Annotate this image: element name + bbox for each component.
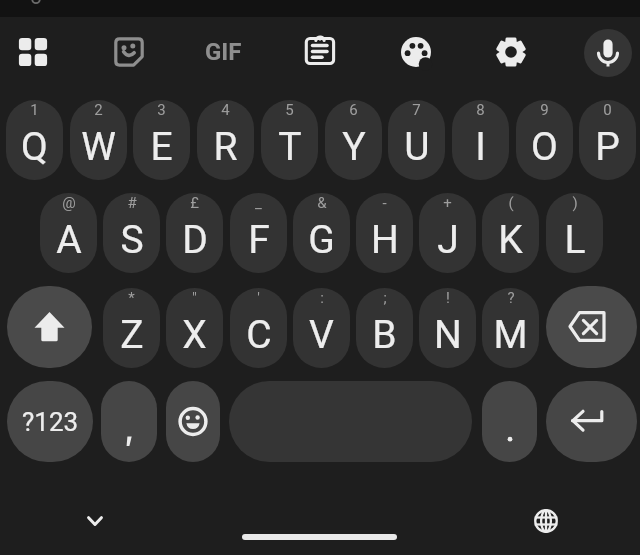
staticText: U	[404, 124, 430, 170]
staticText: '	[257, 289, 260, 307]
staticText: -	[382, 194, 387, 212]
staticText: R	[213, 124, 238, 170]
button[interactable]: Change language	[522, 497, 570, 545]
staticText: "	[192, 289, 197, 307]
staticText: (	[508, 194, 514, 212]
button[interactable]: @	[40, 193, 97, 273]
staticText: 1	[30, 101, 39, 119]
button[interactable]: +	[419, 193, 476, 273]
staticText: M	[493, 312, 528, 358]
button[interactable]: Voice input	[584, 29, 632, 77]
button[interactable]: 3	[133, 100, 190, 180]
button[interactable]: 5	[261, 100, 318, 180]
staticText: P	[595, 124, 620, 170]
staticText: )	[572, 194, 578, 212]
staticText: D	[182, 217, 208, 263]
button[interactable]: 4	[197, 100, 254, 180]
staticText: !	[446, 289, 450, 307]
button[interactable]: Keyboard modes	[9, 28, 57, 76]
staticText: S	[120, 217, 144, 263]
button[interactable]: Emoji	[166, 381, 220, 462]
button[interactable]: Shift	[7, 286, 92, 368]
staticText: K	[498, 217, 523, 263]
staticText: E	[150, 124, 173, 170]
staticText: &	[317, 194, 327, 212]
button[interactable]: #	[103, 193, 160, 273]
button[interactable]: (	[482, 193, 539, 273]
staticText: #	[127, 194, 137, 212]
button[interactable]: Enter	[546, 381, 637, 462]
button[interactable]: 6	[325, 100, 382, 180]
staticText: X	[182, 312, 207, 358]
button[interactable]: Settings	[487, 28, 535, 76]
button[interactable]: 0	[579, 100, 636, 180]
staticText: 3	[157, 101, 166, 119]
staticText: B	[372, 312, 397, 358]
staticText: @	[62, 194, 76, 212]
staticText: 7	[412, 101, 421, 119]
staticText: Z	[120, 312, 144, 358]
button[interactable]: :	[293, 288, 350, 368]
staticText: W	[81, 124, 116, 170]
staticText: ?123	[22, 407, 79, 437]
staticText: 4	[221, 101, 230, 119]
staticText: C	[246, 312, 272, 358]
button[interactable]: "	[166, 288, 223, 368]
staticText: ;	[383, 289, 387, 307]
staticText: :	[320, 289, 324, 307]
staticText: £	[190, 194, 199, 212]
staticText: O	[531, 124, 558, 170]
button[interactable]: Backspace	[546, 286, 637, 368]
staticText: 5	[285, 101, 294, 119]
staticText: V	[309, 312, 334, 358]
button[interactable]: 7	[388, 100, 445, 180]
button[interactable]: ?123	[7, 381, 93, 462]
button[interactable]: *	[103, 288, 160, 368]
staticText: F	[248, 217, 270, 263]
button[interactable]: Period	[482, 381, 537, 462]
staticText: T	[278, 124, 302, 170]
button[interactable]: ?	[482, 288, 539, 368]
button[interactable]: £	[166, 193, 223, 273]
staticText: J	[437, 217, 459, 263]
button[interactable]: ;	[356, 288, 413, 368]
staticText: 6	[349, 101, 358, 119]
staticText: A	[56, 217, 82, 263]
staticText: G	[308, 217, 335, 263]
staticText: _	[255, 194, 262, 212]
button[interactable]: Stickers	[105, 28, 153, 76]
staticText: Y	[342, 124, 366, 170]
staticText: +	[443, 194, 452, 212]
staticText: I	[475, 124, 486, 170]
staticText: GIF	[205, 38, 242, 66]
button[interactable]: Space	[229, 381, 472, 462]
button[interactable]: 1	[6, 100, 63, 180]
staticText: ?	[507, 289, 515, 307]
button[interactable]: GIF	[191, 34, 255, 70]
button[interactable]: 2	[70, 100, 127, 180]
button[interactable]: &	[293, 193, 350, 273]
button[interactable]: Comma	[101, 381, 157, 462]
staticText: 0	[603, 101, 612, 119]
button[interactable]: )	[546, 193, 603, 273]
staticText: Q	[21, 124, 48, 170]
staticText: 8	[476, 101, 485, 119]
staticText: H	[371, 217, 399, 263]
button[interactable]: -	[356, 193, 413, 273]
button[interactable]: Clipboard	[296, 27, 344, 75]
staticText: N	[434, 312, 462, 358]
staticText: L	[564, 217, 586, 263]
button[interactable]: 9	[516, 100, 573, 180]
button[interactable]: Hide keyboard	[71, 497, 119, 545]
button[interactable]: !	[419, 288, 476, 368]
button[interactable]: '	[230, 288, 287, 368]
staticText: 9	[540, 101, 549, 119]
staticText: 2	[94, 101, 103, 119]
button[interactable]: _	[230, 193, 287, 273]
staticText: *	[128, 289, 135, 307]
button[interactable]: 8	[452, 100, 509, 180]
button[interactable]: Themes	[392, 28, 440, 76]
